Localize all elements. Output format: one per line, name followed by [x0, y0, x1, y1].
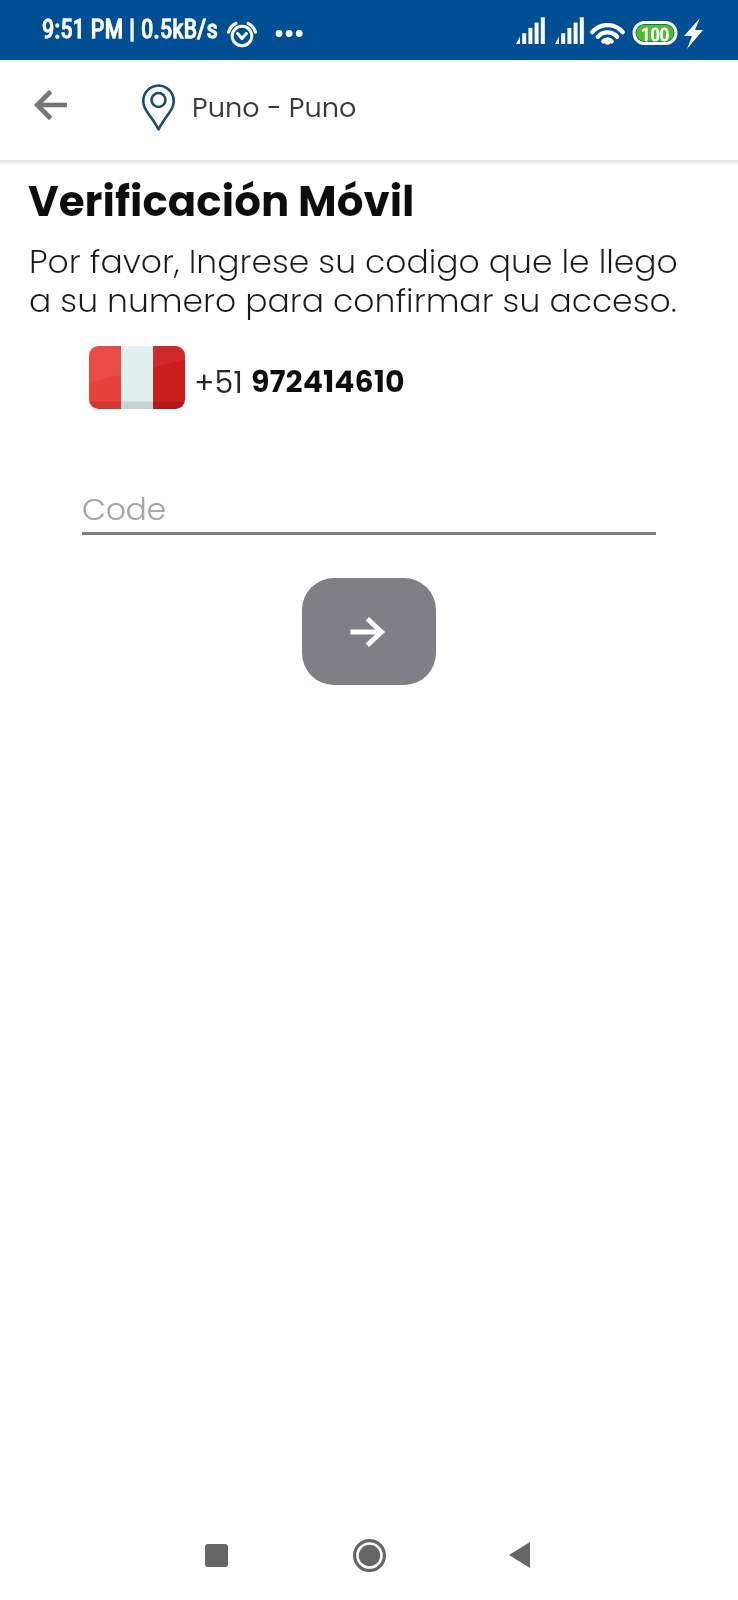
staticText: Puno - Puno — [192, 89, 357, 127]
button[interactable]: Continuar — [302, 578, 436, 685]
button[interactable]: Back — [469, 1505, 569, 1600]
staticText: 972414610 — [251, 361, 405, 403]
button[interactable]: Puno - Puno — [132, 72, 357, 144]
button[interactable]: Code — [82, 469, 656, 535]
staticText: +51 — [194, 362, 243, 404]
staticText: 100 — [641, 23, 670, 45]
button[interactable]: Recent apps — [166, 1505, 266, 1600]
staticText: Por favor, Ingrese su codigo que le lleg… — [29, 238, 678, 323]
staticText: 9:51 PM | 0.5kB/s — [42, 15, 218, 44]
staticText: Verificación Móvil — [28, 172, 415, 231]
button[interactable]: Back — [19, 73, 83, 137]
staticText: Code — [82, 487, 167, 530]
button[interactable]: Home — [319, 1505, 419, 1600]
